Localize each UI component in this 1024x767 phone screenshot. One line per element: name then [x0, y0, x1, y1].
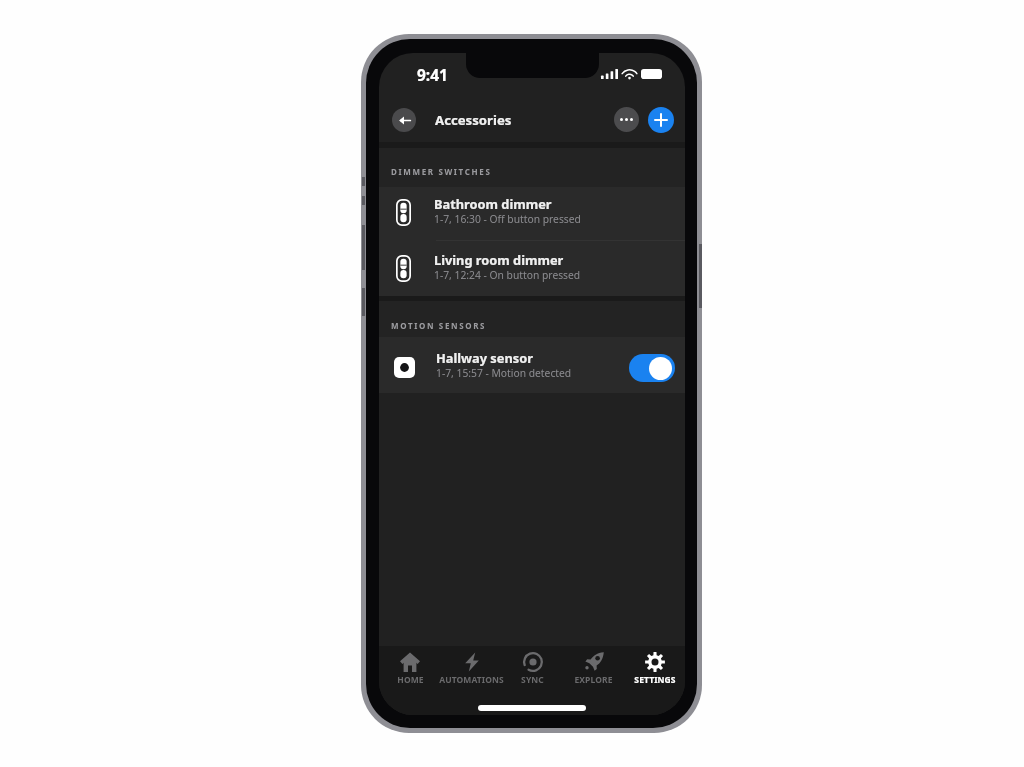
staticText: 1-7, 15:57 - Motion detected — [436, 366, 572, 380]
staticText: SETTINGS — [634, 674, 676, 686]
button[interactable]: Hallway sensor — [379, 337, 685, 393]
staticText: AUTOMATIONS — [439, 674, 504, 686]
button[interactable]: HOME — [379, 646, 441, 691]
staticText: EXPLORE — [574, 674, 613, 686]
button[interactable]: SETTINGS — [624, 646, 685, 691]
staticText: Bathroom dimmer — [434, 195, 552, 212]
staticText: SYNC — [521, 674, 544, 686]
staticText: Living room dimmer — [434, 251, 564, 268]
staticText: 1-7, 16:30 - Off button pressed — [434, 212, 581, 226]
button[interactable]: Living room dimmer — [379, 241, 685, 296]
button[interactable]: More options — [614, 107, 639, 132]
button[interactable]: SYNC — [502, 646, 563, 691]
button[interactable]: Bathroom dimmer — [379, 187, 685, 241]
button[interactable]: Add accessory — [648, 107, 674, 133]
button[interactable]: AUTOMATIONS — [441, 646, 502, 691]
button[interactable]: Back — [392, 108, 416, 132]
button[interactable]: Toggle Hallway sensor — [629, 354, 675, 382]
staticText: 9:41 — [417, 64, 448, 85]
staticText: DIMMER SWITCHES — [391, 166, 492, 177]
staticText: MOTION SENSORS — [391, 320, 487, 331]
staticText: Hallway sensor — [436, 349, 533, 366]
button[interactable]: EXPLORE — [563, 646, 624, 691]
staticText: 1-7, 12:24 - On button pressed — [434, 268, 581, 282]
staticText: HOME — [397, 674, 424, 686]
staticText: Accessories — [435, 111, 512, 129]
